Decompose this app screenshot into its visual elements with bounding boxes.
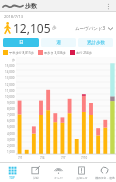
staticText: 7/4: [40, 156, 45, 160]
staticText: 機器設定・連携: [95, 176, 115, 180]
staticText: 週: [56, 40, 61, 46]
staticText: 7/1: [18, 156, 23, 160]
staticText: TOP: [9, 176, 15, 180]
staticText: 4,000: [7, 132, 15, 136]
staticText: 2,000: [7, 144, 15, 148]
staticText: ムーヴバンド3: [75, 25, 106, 31]
staticText: 14,000: [5, 70, 15, 74]
staticText: 10,000: [5, 95, 15, 99]
staticText: 記録: [33, 176, 39, 180]
staticText: 日: [19, 40, 24, 46]
staticText: 歩数: [25, 2, 37, 10]
staticText: 12,105: [13, 20, 51, 36]
button[interactable]: 累計歩数: [78, 38, 113, 47]
staticText: 平常歩行 8,815歩: [9, 51, 34, 55]
button[interactable]: 記録: [24, 163, 47, 182]
staticText: 7/10: [81, 156, 88, 160]
staticText: 15,000: [5, 64, 15, 68]
staticText: 2018/7/13: [4, 14, 23, 19]
staticText: 12,000: [5, 83, 15, 87]
button[interactable]: ムーヴバンド3: [75, 25, 113, 31]
staticText: 6,000: [7, 119, 15, 123]
button[interactable]: からだ: [47, 163, 70, 182]
staticText: 9,000: [7, 101, 15, 105]
staticText: 7/7: [61, 156, 66, 160]
staticText: 13,000: [5, 76, 15, 80]
button[interactable]: 機器設定・連携: [93, 163, 116, 182]
staticText: 8,000: [7, 107, 15, 111]
staticText: 11,000: [5, 89, 15, 93]
button[interactable]: 週: [41, 38, 76, 47]
staticText: 5,000: [7, 125, 15, 129]
staticText: 累計歩数: [87, 40, 105, 46]
staticText: 歩: [12, 58, 15, 62]
button[interactable]: メニュー: [103, 1, 113, 11]
staticText: 3,000: [7, 138, 15, 142]
staticText: お知らせ: [76, 176, 88, 180]
button[interactable]: 日: [3, 38, 39, 47]
staticText: 7,000: [7, 113, 15, 117]
staticText: 早歩き 3,036歩: [44, 51, 66, 55]
button[interactable]: お知らせ: [70, 163, 93, 182]
staticText: 1,000: [7, 150, 15, 154]
button[interactable]: TOP: [0, 163, 24, 182]
staticText: 歩: [52, 25, 57, 31]
staticText: からだ: [54, 176, 63, 180]
staticText: 走行 254歩: [76, 51, 92, 55]
